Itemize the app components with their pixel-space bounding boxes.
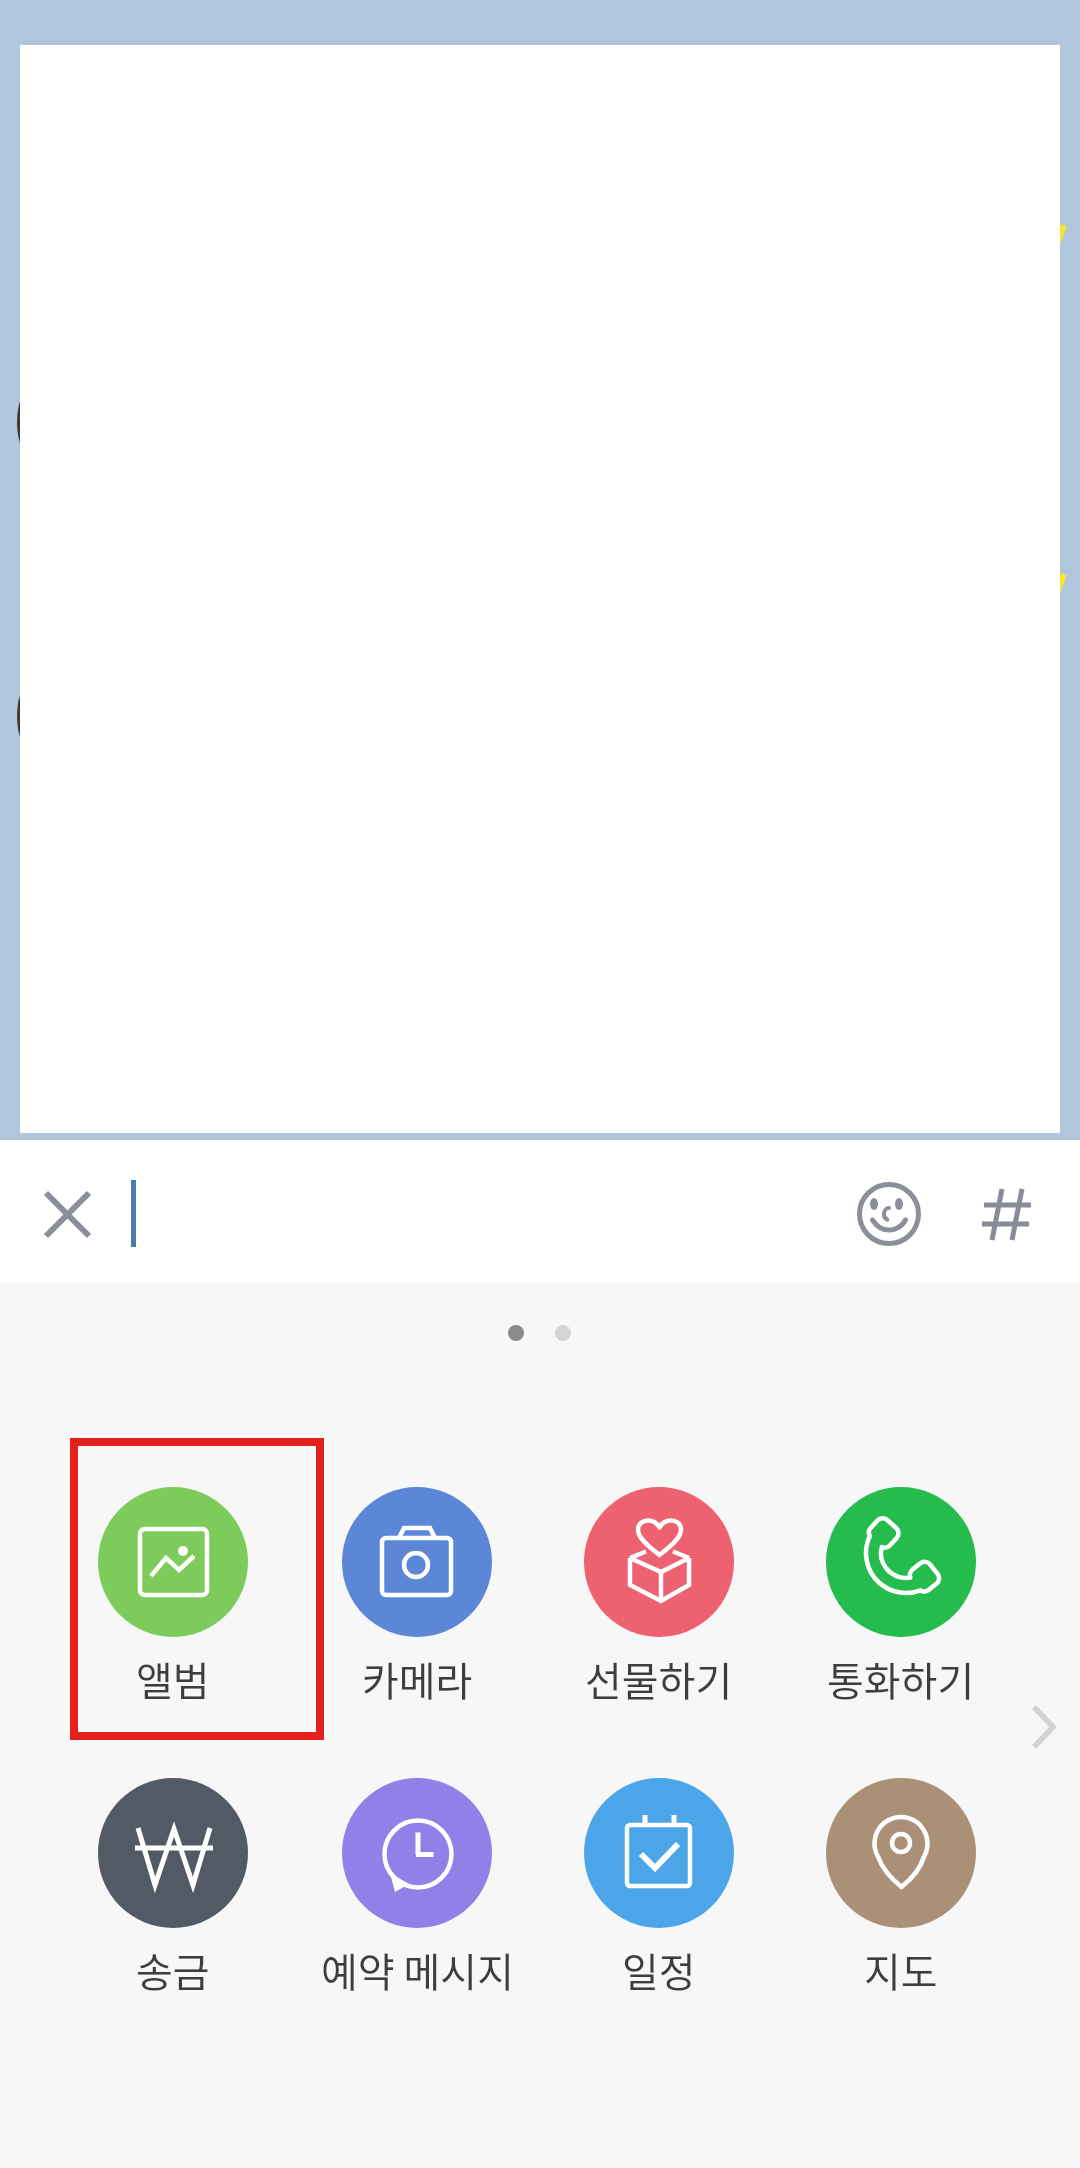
staticText: 예약 메시지 bbox=[321, 1941, 514, 1999]
button[interactable] bbox=[118, 1150, 838, 1273]
staticText: 선물하기 bbox=[585, 1650, 733, 1708]
button[interactable]: 통화하기 bbox=[779, 1487, 1023, 1708]
staticText: 지도 bbox=[864, 1941, 938, 1999]
button[interactable]: 지도 bbox=[779, 1778, 1023, 1999]
button[interactable]: 앨범 bbox=[51, 1487, 295, 1708]
button[interactable]: 송금 bbox=[51, 1778, 295, 1999]
staticText: 통화하기 bbox=[827, 1650, 975, 1708]
button[interactable]: 예약 메시지 bbox=[295, 1778, 539, 1999]
button[interactable]: 선물하기 bbox=[537, 1487, 781, 1708]
staticText: 송금 bbox=[136, 1941, 210, 1999]
staticText: 카메라 bbox=[362, 1650, 473, 1708]
staticText: 일정 bbox=[622, 1941, 696, 1999]
button[interactable]: 일정 bbox=[537, 1778, 781, 1999]
button[interactable] bbox=[972, 1180, 1040, 1248]
button[interactable]: 카메라 bbox=[295, 1487, 539, 1708]
button[interactable] bbox=[28, 1175, 108, 1255]
button[interactable] bbox=[853, 1178, 925, 1250]
button[interactable] bbox=[1014, 1677, 1080, 1777]
staticText: 앨범 bbox=[136, 1650, 210, 1708]
